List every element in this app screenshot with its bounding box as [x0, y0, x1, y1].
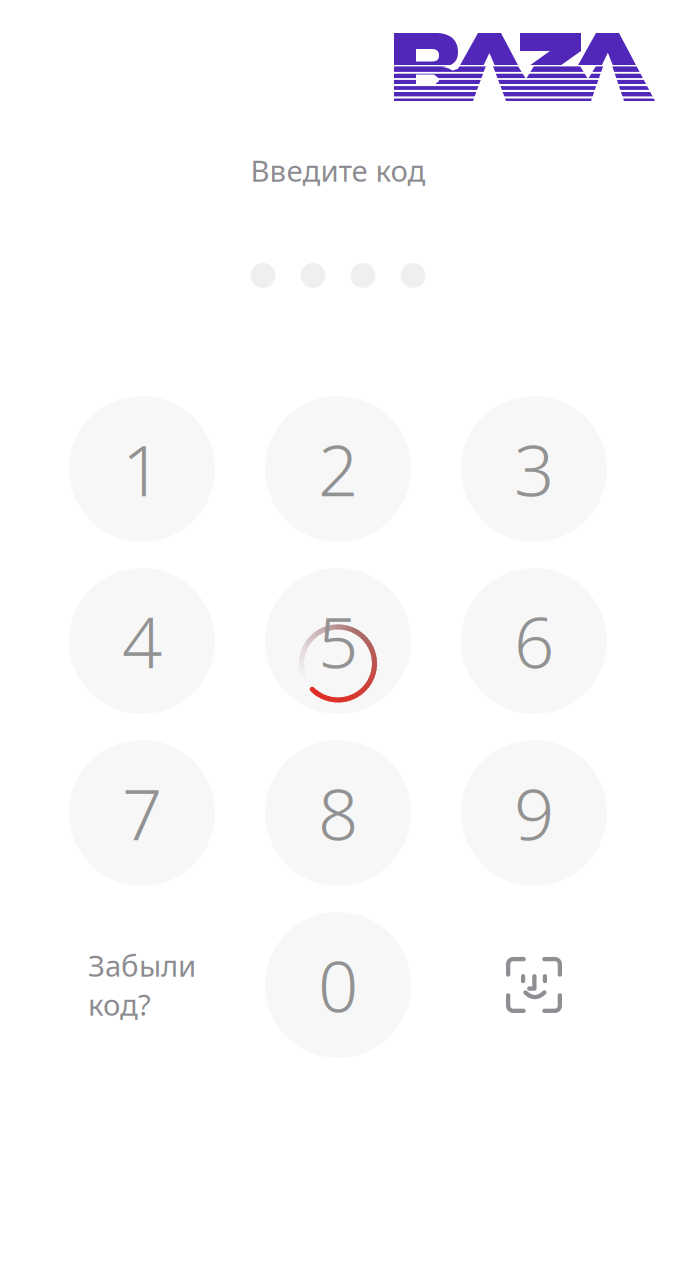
staticText: Забыли код?	[88, 946, 196, 1024]
button[interactable]: 2	[265, 396, 411, 542]
button[interactable]: 7	[69, 740, 215, 886]
button[interactable]: Забыли код?	[69, 912, 215, 1058]
button[interactable]: 9	[461, 740, 607, 886]
button[interactable]: Face ID	[461, 912, 607, 1058]
staticText: 9	[514, 766, 554, 860]
button[interactable]: 4	[69, 568, 215, 714]
button[interactable]: 8	[265, 740, 411, 886]
button[interactable]: 6	[461, 568, 607, 714]
staticText: 4	[122, 594, 162, 688]
staticText: 6	[514, 594, 554, 688]
button[interactable]: 0	[265, 912, 411, 1058]
button[interactable]: 1	[69, 396, 215, 542]
button[interactable]: 5	[265, 568, 411, 714]
staticText: 1	[122, 422, 162, 516]
staticText: 5	[318, 594, 358, 688]
staticText: 7	[122, 766, 162, 860]
staticText: Введите код	[250, 151, 425, 190]
button[interactable]: 3	[461, 396, 607, 542]
staticText: 2	[318, 422, 358, 516]
staticText: 8	[318, 766, 358, 860]
staticText: 3	[514, 422, 554, 516]
staticText: 0	[318, 938, 358, 1032]
